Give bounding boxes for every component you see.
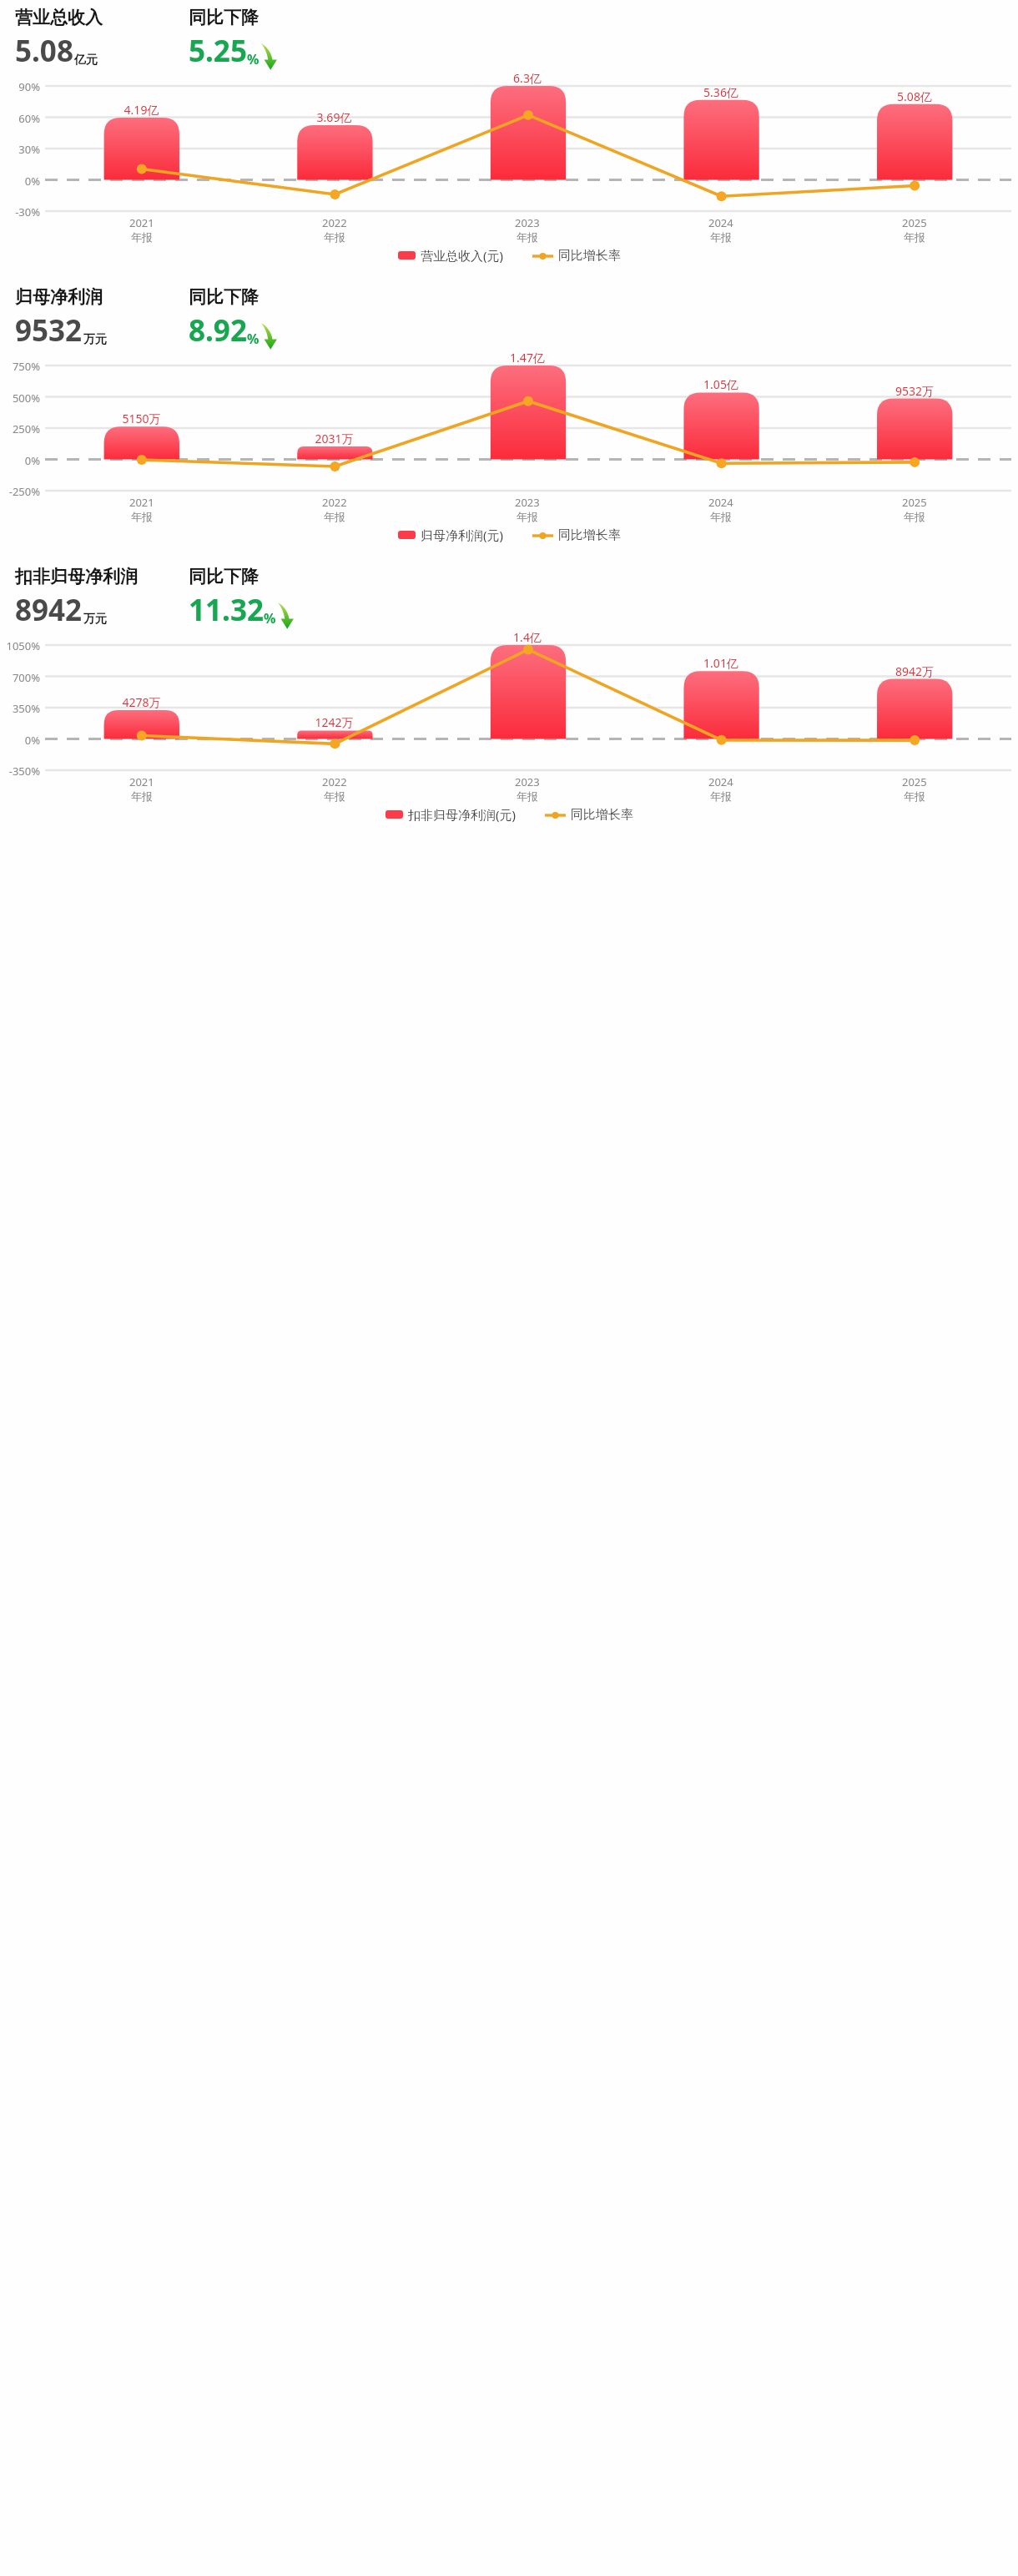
staticText: 700%: [0, 670, 40, 685]
staticText: 同比下降: [189, 566, 259, 587]
staticText: 年报: [710, 230, 732, 244]
staticText: 年报: [324, 789, 345, 803]
staticText: 350%: [0, 701, 40, 716]
staticText: 2022: [322, 215, 347, 230]
staticText: 5.36亿: [624, 84, 818, 100]
other: 同比下降: [260, 322, 280, 350]
staticText: %: [247, 330, 260, 348]
staticText: 5150万: [45, 411, 238, 426]
staticText: 6.3亿: [431, 70, 624, 86]
staticText: 2025: [902, 774, 927, 789]
other: 同比下降: [277, 602, 297, 629]
staticText: 30%: [0, 142, 40, 157]
staticText: 8942万: [818, 663, 1011, 679]
staticText: 万元: [83, 612, 107, 627]
staticText: 4278万: [45, 694, 238, 710]
staticText: -350%: [0, 764, 40, 779]
staticText: 2022: [322, 774, 347, 789]
staticText: 1.4亿: [431, 629, 624, 645]
staticText: -250%: [0, 484, 40, 499]
button[interactable]: 同比增长率: [528, 523, 625, 547]
staticText: 1.47亿: [431, 350, 624, 365]
staticText: 2021: [129, 215, 154, 230]
staticText: 2023: [515, 215, 540, 230]
staticText: 同比增长率: [558, 527, 621, 543]
staticText: 年报: [904, 510, 925, 523]
staticText: 同比增长率: [571, 807, 633, 823]
button[interactable]: 同比增长率: [541, 803, 638, 827]
staticText: 万元: [83, 332, 107, 347]
staticText: 年报: [324, 230, 345, 244]
staticText: 3.69亿: [238, 109, 431, 125]
staticText: %: [247, 50, 260, 68]
staticText: -30%: [0, 204, 40, 219]
staticText: 营业总收入(元): [421, 247, 504, 264]
staticText: 年报: [517, 510, 538, 523]
staticText: 2025: [902, 495, 927, 510]
staticText: 0%: [0, 453, 40, 468]
staticText: 0%: [0, 174, 40, 189]
staticText: 扣非归母净利润(元): [408, 806, 517, 823]
staticText: 年报: [904, 789, 925, 803]
button[interactable]: 同比增长率: [528, 244, 625, 268]
staticText: 年报: [517, 789, 538, 803]
staticText: 5.08亿: [818, 88, 1011, 104]
other: 同比下降: [260, 43, 280, 70]
staticText: 2023: [515, 774, 540, 789]
staticText: 同比下降: [189, 286, 259, 308]
staticText: 1242万: [238, 714, 431, 730]
staticText: 2024: [708, 215, 733, 230]
staticText: 750%: [0, 359, 40, 374]
staticText: 2021: [129, 495, 154, 510]
staticText: 营业总收入: [15, 7, 103, 28]
staticText: 9532: [15, 310, 83, 350]
staticText: 2025: [902, 215, 927, 230]
staticText: 11.32: [189, 590, 264, 630]
staticText: 4.19亿: [45, 102, 238, 118]
staticText: 2021: [129, 774, 154, 789]
staticText: 年报: [131, 510, 153, 523]
staticText: 1050%: [0, 638, 40, 653]
staticText: 归母净利润: [15, 286, 103, 308]
staticText: 2023: [515, 495, 540, 510]
staticText: 归母净利润(元): [421, 527, 504, 543]
staticText: 年报: [131, 230, 153, 244]
staticText: 0%: [0, 733, 40, 748]
staticText: 1.05亿: [624, 376, 818, 392]
button[interactable]: 营业总收入(元): [394, 243, 508, 268]
staticText: 年报: [710, 510, 732, 523]
button[interactable]: 扣非归母净利润(元): [381, 802, 521, 827]
staticText: 60%: [0, 111, 40, 126]
staticText: 扣非归母净利润: [15, 566, 138, 587]
staticText: 年报: [324, 510, 345, 523]
staticText: 年报: [710, 789, 732, 803]
staticText: 2024: [708, 774, 733, 789]
staticText: 5.25: [189, 31, 247, 71]
staticText: 250%: [0, 421, 40, 436]
staticText: 同比下降: [189, 7, 259, 28]
staticText: 年报: [517, 230, 538, 244]
staticText: 1.01亿: [624, 655, 818, 671]
staticText: 8.92: [189, 310, 247, 350]
staticText: 9532万: [818, 383, 1011, 399]
staticText: 5.08: [15, 31, 73, 71]
staticText: 2022: [322, 495, 347, 510]
staticText: 2024: [708, 495, 733, 510]
staticText: 亿元: [74, 53, 98, 68]
staticText: 500%: [0, 391, 40, 406]
staticText: 8942: [15, 590, 83, 630]
staticText: 年报: [904, 230, 925, 244]
staticText: %: [264, 609, 276, 628]
staticText: 年报: [131, 789, 153, 803]
staticText: 同比增长率: [558, 248, 621, 264]
button[interactable]: 归母净利润(元): [394, 522, 508, 547]
staticText: 90%: [0, 79, 40, 94]
staticText: 2031万: [238, 431, 431, 446]
